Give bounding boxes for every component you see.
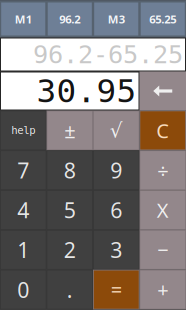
button[interactable]: ÷: [139, 150, 186, 190]
staticText: .: [67, 275, 73, 304]
button[interactable]: C: [139, 110, 186, 150]
button[interactable]: 5: [46, 190, 93, 230]
staticText: 65.25: [149, 11, 176, 27]
button[interactable]: 7: [0, 150, 46, 190]
button[interactable]: ±: [46, 110, 93, 150]
staticText: 8: [64, 156, 76, 185]
button[interactable]: 0: [0, 270, 46, 309]
button[interactable]: +: [139, 270, 186, 309]
staticText: 3: [110, 235, 122, 264]
button[interactable]: M3: [93, 0, 139, 37]
button[interactable]: M1: [0, 0, 46, 37]
staticText: 0: [17, 275, 29, 304]
staticText: √: [110, 119, 123, 142]
staticText: −: [157, 236, 168, 263]
staticText: 1: [17, 235, 29, 264]
button[interactable]: 2: [46, 230, 93, 270]
staticText: X: [157, 196, 169, 224]
staticText: ±: [64, 117, 75, 144]
button[interactable]: .: [46, 270, 93, 309]
button[interactable]: 1: [0, 230, 46, 270]
staticText: 9: [110, 156, 122, 185]
button[interactable]: =: [93, 270, 139, 309]
staticText: help: [11, 124, 35, 137]
staticText: 4: [17, 195, 29, 225]
staticText: 96.2-65.25: [33, 40, 183, 69]
staticText: 30.95: [36, 72, 136, 110]
button[interactable]: −: [139, 230, 186, 270]
staticText: ÷: [157, 157, 168, 184]
button[interactable]: 8: [46, 150, 93, 190]
button[interactable]: help: [0, 110, 46, 150]
button[interactable]: Backspace: [139, 71, 186, 110]
staticText: 6: [110, 195, 122, 225]
button[interactable]: X: [139, 190, 186, 230]
button[interactable]: 96.2: [46, 0, 93, 37]
button[interactable]: √: [93, 110, 139, 150]
staticText: 7: [17, 156, 29, 185]
staticText: M3: [108, 11, 125, 27]
staticText: 2: [64, 235, 76, 264]
button[interactable]: 65.25: [139, 0, 186, 37]
staticText: +: [157, 276, 168, 303]
button[interactable]: 3: [93, 230, 139, 270]
staticText: M1: [15, 11, 32, 27]
button[interactable]: 4: [0, 190, 46, 230]
button[interactable]: 9: [93, 150, 139, 190]
staticText: 5: [64, 195, 76, 225]
staticText: 96.2: [59, 11, 80, 27]
staticText: =: [111, 276, 122, 303]
staticText: C: [156, 117, 169, 144]
button[interactable]: 6: [93, 190, 139, 230]
